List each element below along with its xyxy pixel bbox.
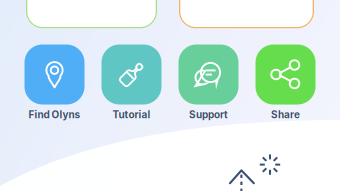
staticText: Tutorial [112, 108, 150, 121]
button[interactable]: Support [162, 44, 254, 124]
button[interactable]: Find Olyns [8, 44, 100, 124]
button[interactable]: Tutorial [85, 44, 177, 124]
button[interactable]: Share [239, 44, 331, 124]
staticText: Support [189, 108, 228, 121]
staticText: Share [271, 108, 300, 121]
staticText: Find Olyns [28, 108, 80, 121]
